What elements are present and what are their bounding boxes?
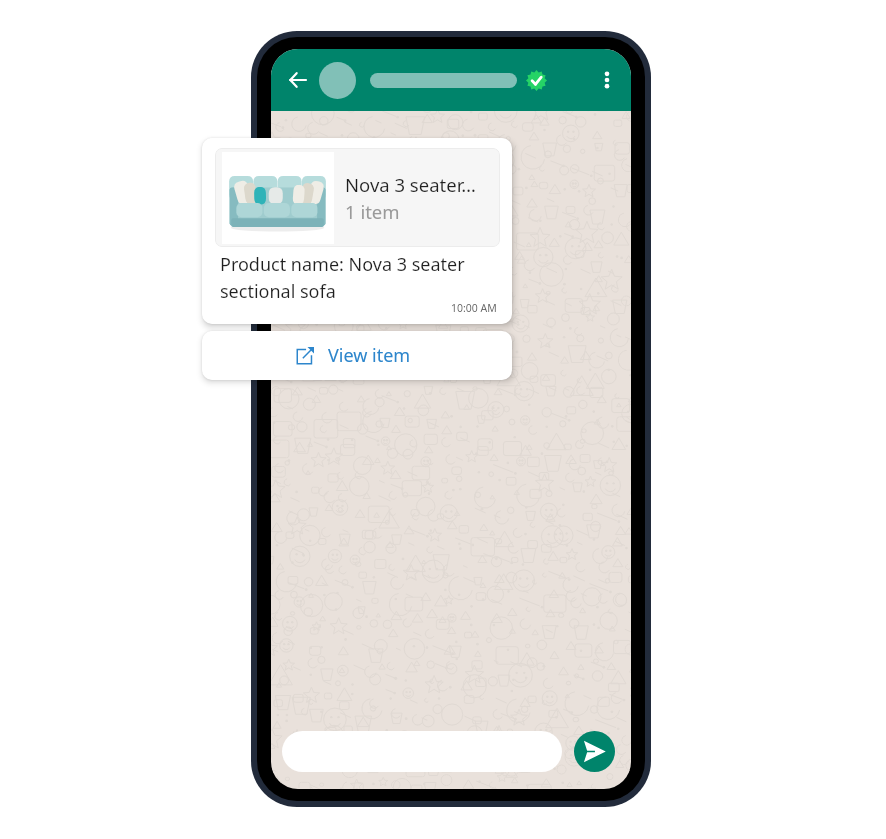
- button[interactable]: Send: [574, 731, 615, 772]
- button[interactable]: Nova 3 seater…: [202, 138, 512, 324]
- staticText: 10:00 AM: [451, 301, 497, 315]
- staticText: Nova 3 seater…: [345, 172, 476, 197]
- staticText: 1 item: [345, 199, 400, 224]
- button[interactable]: [282, 731, 562, 772]
- button[interactable]: Nova 3 seater…: [215, 148, 500, 247]
- staticText: Product name: Nova 3 seater sectional so…: [220, 252, 500, 303]
- button[interactable]: More options: [594, 67, 620, 93]
- button[interactable]: Contact profile photo: [319, 62, 356, 99]
- staticText: View item: [328, 343, 411, 368]
- button[interactable]: Back: [288, 68, 306, 92]
- button[interactable]: View item: [202, 331, 512, 380]
